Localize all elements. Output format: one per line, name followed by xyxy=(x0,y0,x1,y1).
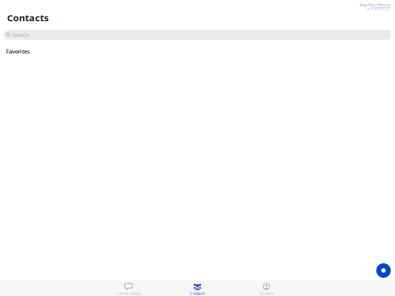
staticText: Conversations xyxy=(116,291,141,296)
staticText: Search xyxy=(12,31,29,38)
button[interactable]: Contacts xyxy=(163,281,232,296)
staticText: Account xyxy=(259,291,273,296)
button[interactable]: New contact xyxy=(375,262,391,278)
staticText: Favorites xyxy=(6,48,30,55)
staticText: Contacts xyxy=(7,11,49,24)
button[interactable]: App Store Review xyxy=(360,2,390,11)
button[interactable]: Conversations xyxy=(94,281,163,296)
button[interactable]: Account xyxy=(232,281,301,296)
button[interactable]: Search xyxy=(4,30,391,40)
staticText: → 7777777777 xyxy=(366,6,390,11)
staticText: App Store Review xyxy=(360,2,390,7)
staticText: Contacts xyxy=(190,291,205,296)
